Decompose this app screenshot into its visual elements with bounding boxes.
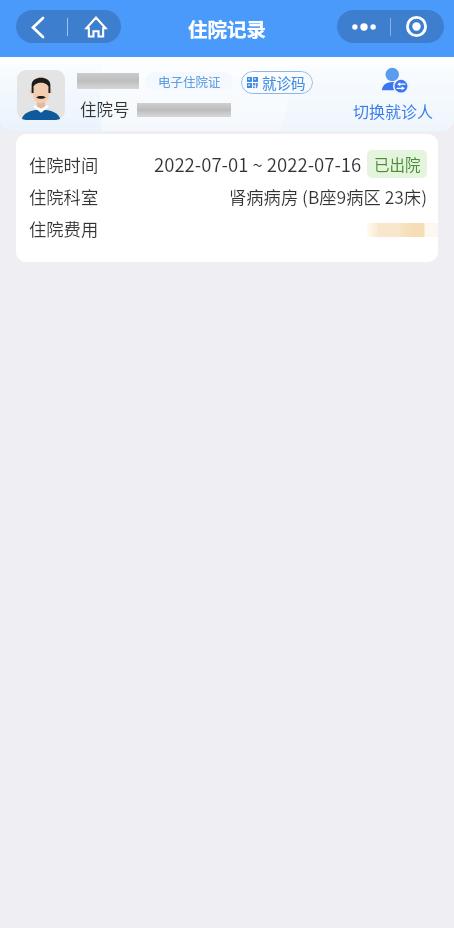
button[interactable]: 就诊码 [241, 71, 313, 94]
staticText: 切换就诊人 [353, 99, 434, 122]
button[interactable]: 电子住院证 [145, 72, 233, 90]
button[interactable]: More options [337, 10, 390, 43]
staticText: 已出院 [374, 153, 421, 175]
button[interactable]: Back [16, 10, 66, 43]
staticText: 住院费用 [29, 216, 99, 241]
staticText: 住院号 [80, 97, 130, 121]
button[interactable]: Close mini program [391, 10, 444, 43]
staticText: 2022-07-01 ~ 2022-07-16 [154, 151, 362, 178]
button[interactable]: 切换就诊人 [347, 68, 439, 124]
staticText: 就诊码 [262, 72, 306, 93]
staticText: 电子住院证 [158, 72, 221, 90]
staticText: 住院时间 [29, 152, 99, 177]
staticText: 住院记录 [188, 14, 267, 42]
staticText: 住院科室 [29, 184, 99, 209]
button[interactable]: Home [71, 10, 121, 43]
staticText: 肾病病房 (B座9病区 23床) [229, 184, 427, 209]
